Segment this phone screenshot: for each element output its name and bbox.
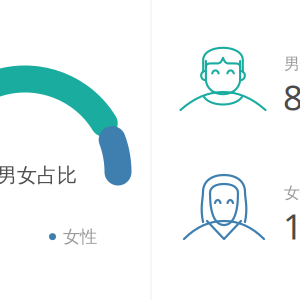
staticText: 16% bbox=[283, 203, 300, 249]
staticText: 女性 bbox=[284, 183, 300, 203]
staticText: 男女占比 bbox=[0, 163, 77, 188]
staticText: 男性 bbox=[284, 54, 300, 74]
button[interactable]: 女性 bbox=[49, 226, 97, 247]
staticText: 女性 bbox=[63, 226, 97, 247]
staticText: 84% bbox=[283, 74, 300, 120]
